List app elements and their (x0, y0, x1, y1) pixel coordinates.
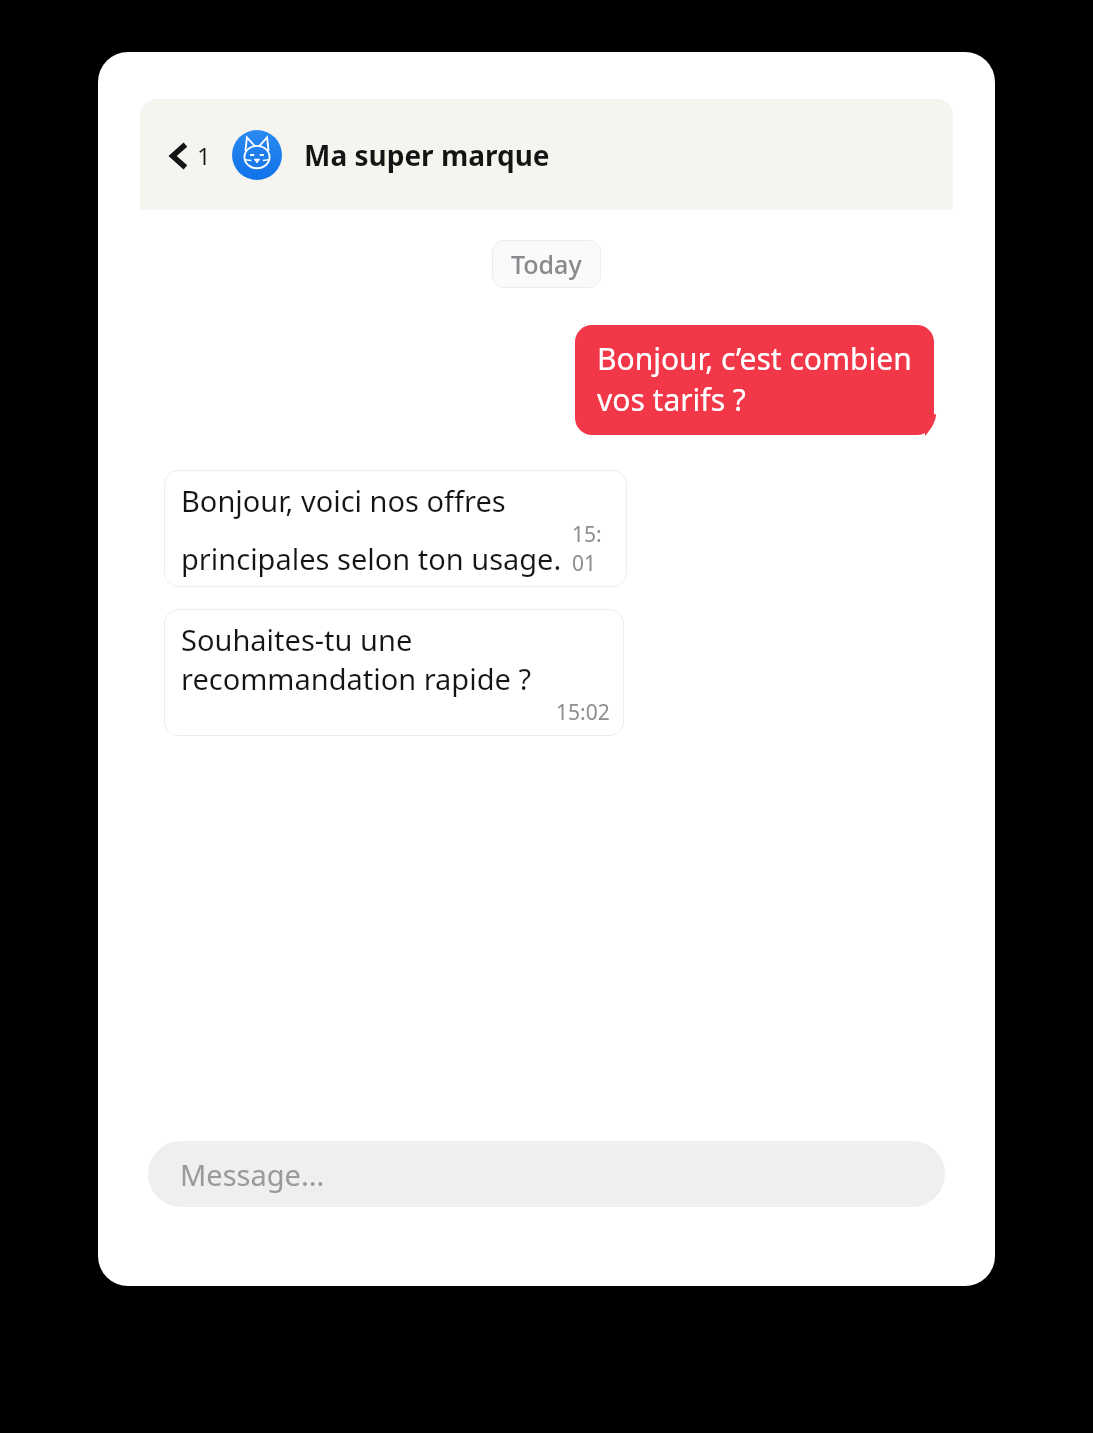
button[interactable]: Bonjour, voici nos offres (164, 470, 627, 587)
button[interactable]: Back (165, 133, 215, 178)
button[interactable]: Bonjour, c’est combien (575, 325, 934, 435)
staticText: vos tarifs ? (597, 379, 746, 420)
staticText: Message... (180, 1155, 325, 1194)
staticText: 1 (197, 139, 211, 172)
button[interactable]: Profile avatar (232, 130, 282, 180)
staticText: Ma super marque (304, 136, 550, 174)
staticText: Bonjour, c’est combien (597, 338, 912, 379)
staticText: recommandation rapide ? (181, 659, 532, 698)
staticText: principales selon ton usage. (181, 539, 562, 578)
button[interactable]: Message... (148, 1141, 945, 1207)
staticText: Souhaites-tu une (181, 620, 413, 659)
button[interactable]: Today (492, 240, 601, 288)
staticText: Today (511, 247, 582, 281)
button[interactable]: Souhaites-tu une (164, 609, 624, 736)
staticText: Bonjour, voici nos offres (181, 481, 506, 520)
staticText: 15:02 (556, 698, 610, 727)
staticText: 15:01 (572, 520, 613, 578)
